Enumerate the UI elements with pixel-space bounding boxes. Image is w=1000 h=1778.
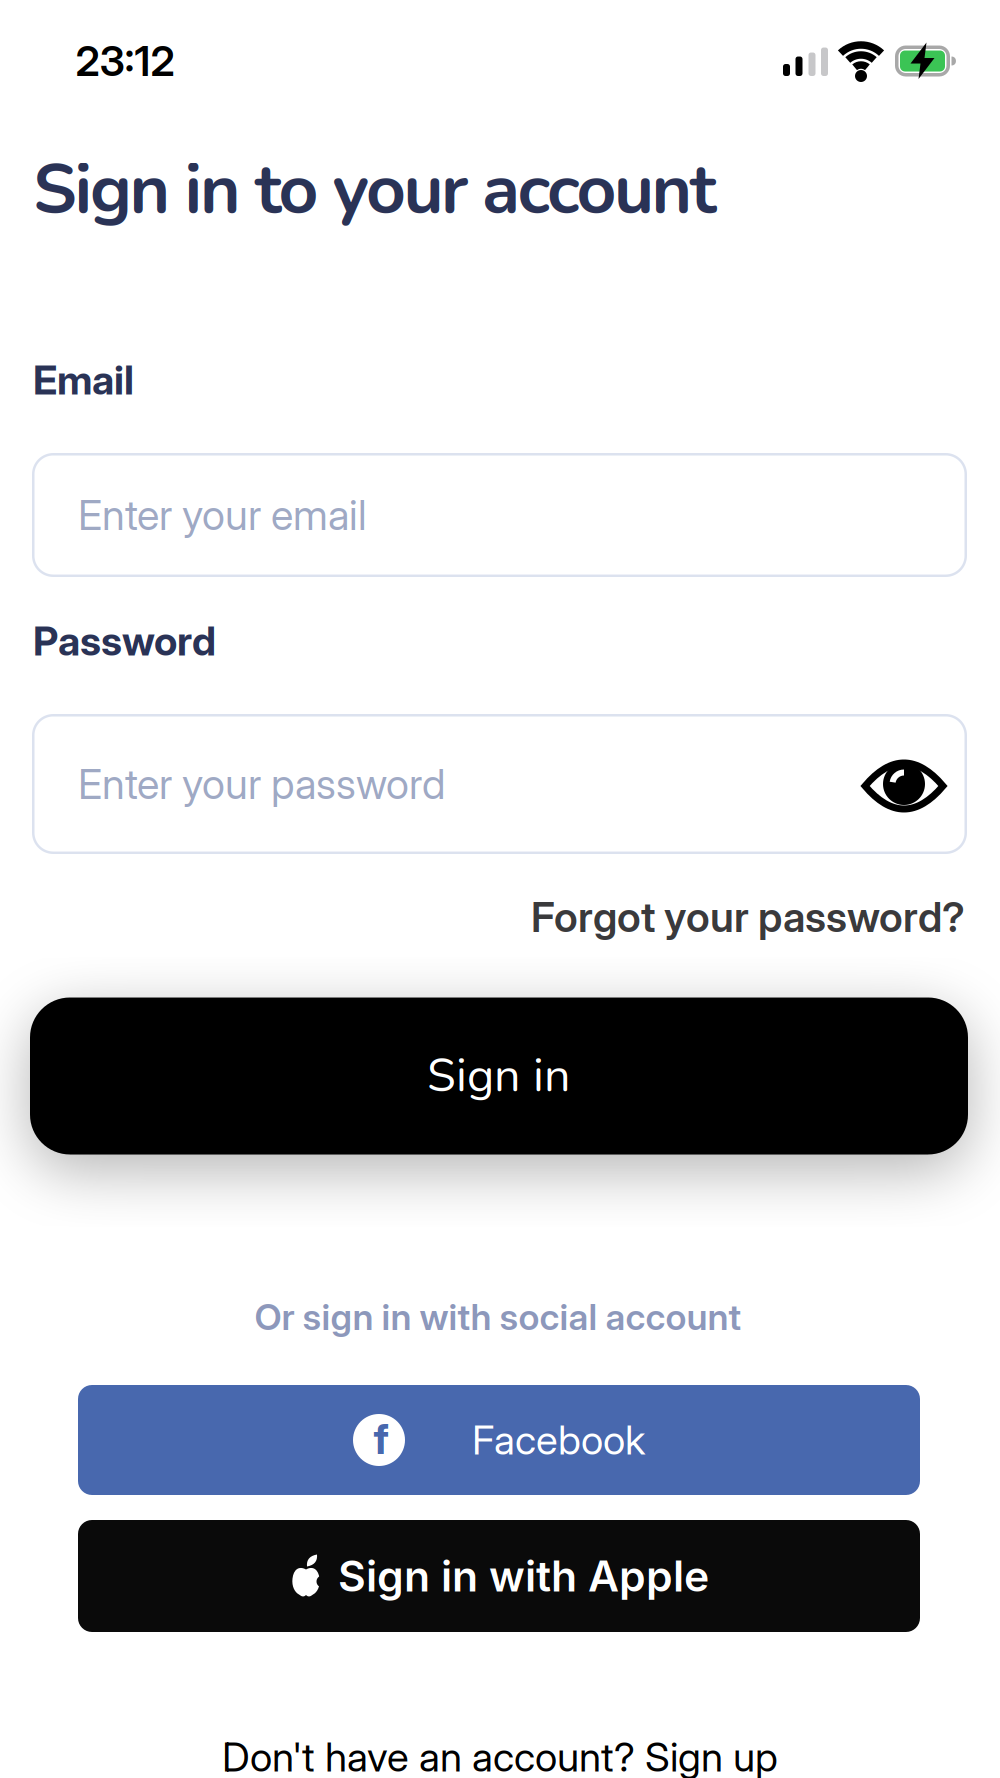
staticText: Enter your email — [78, 490, 367, 540]
staticText: Enter your password — [78, 759, 445, 809]
button[interactable]: Sign in with Apple — [78, 1520, 920, 1632]
staticText: Forgot your password? — [531, 892, 965, 942]
staticText: 23:12 — [75, 36, 174, 86]
staticText: f — [373, 1414, 388, 1464]
staticText: Password — [33, 617, 216, 665]
button[interactable]: f — [78, 1385, 920, 1495]
staticText: Sign in to your account — [33, 143, 717, 237]
staticText: Sign in with Apple — [338, 1550, 709, 1602]
button[interactable]: Don't have an account? Sign up — [222, 1733, 778, 1778]
button[interactable]: Forgot your password? — [0, 892, 1000, 942]
staticText: Facebook — [472, 1416, 645, 1464]
button[interactable]: Sign in — [30, 997, 968, 1154]
staticText: Sign in — [427, 1044, 571, 1108]
staticText: Don't have an account? Sign up — [222, 1733, 778, 1778]
staticText: Or sign in with social account — [254, 1295, 741, 1339]
staticText: Email — [33, 356, 134, 404]
button[interactable] — [859, 754, 949, 818]
